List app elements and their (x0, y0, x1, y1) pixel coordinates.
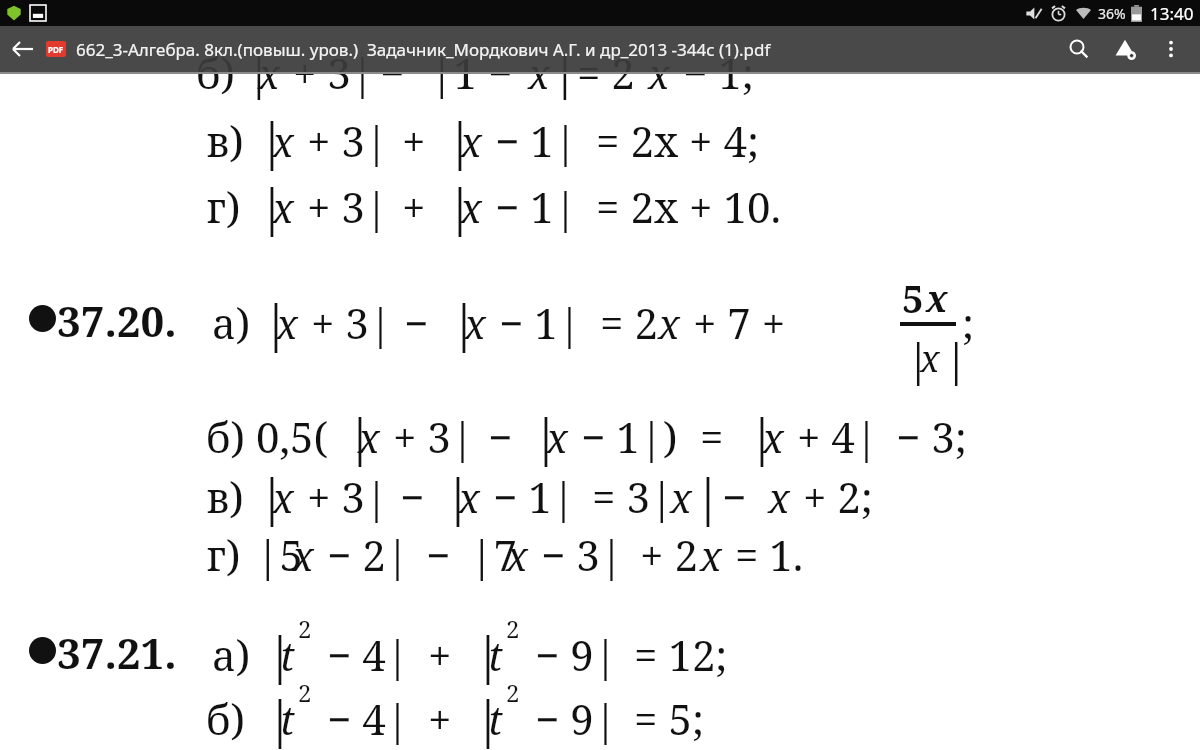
staticText: x (658, 296, 680, 350)
button[interactable]: Search (1056, 26, 1102, 72)
staticText: + 2 (640, 526, 698, 583)
staticText: x (292, 528, 314, 582)
staticText: − 3; (896, 408, 967, 465)
staticText: + 3| (382, 408, 475, 465)
staticText: x (700, 528, 722, 582)
staticText: x (276, 296, 298, 350)
staticText: 5 (902, 272, 924, 324)
staticText: x (768, 470, 790, 524)
staticText: + (428, 690, 452, 747)
staticText: x (920, 334, 940, 383)
staticText: − (722, 468, 747, 525)
staticText: − 4| (316, 690, 410, 747)
staticText: − 1; (672, 44, 754, 101)
staticText: − (380, 44, 405, 101)
staticText: | (446, 172, 474, 240)
staticText: x (258, 46, 280, 100)
staticText: x (546, 410, 568, 464)
staticText: 662_3-Алгебра. 8кл.(повыш. уров.) Задачн… (76, 38, 771, 61)
staticText: | (450, 288, 478, 356)
staticText: | (346, 402, 374, 470)
staticText: | (446, 106, 474, 174)
staticText: + (402, 178, 426, 235)
staticText: 36% (1098, 4, 1126, 23)
staticText: | (748, 402, 776, 470)
staticText: + 3| (296, 468, 389, 525)
staticText: x (272, 470, 294, 524)
staticText: x (670, 470, 692, 524)
staticText: t (488, 692, 503, 746)
staticText: x (358, 410, 380, 464)
staticText: − 9| (524, 626, 618, 683)
staticText: = 2x + 10. (596, 178, 781, 235)
staticText: | (906, 328, 931, 388)
staticText: + 3| (296, 178, 389, 235)
staticText: x (762, 410, 784, 464)
staticText: − 1| (488, 294, 582, 351)
staticText: − 1| (484, 112, 578, 169)
staticText: | (246, 40, 272, 103)
staticText: | (944, 328, 969, 388)
staticText: − (400, 468, 425, 525)
staticText: + 4| (786, 408, 879, 465)
staticText: t (280, 628, 295, 682)
staticText: | (474, 620, 502, 688)
staticText: x (528, 46, 550, 100)
staticText: − 3| (530, 526, 624, 583)
staticText: |7 (470, 526, 517, 583)
staticText: x (458, 470, 480, 524)
staticText: | (444, 462, 472, 530)
button[interactable]: Save to Drive (1102, 26, 1148, 72)
staticText: + (402, 112, 426, 169)
staticText: − (404, 294, 429, 351)
staticText: в) (206, 112, 244, 169)
staticText: x (460, 114, 482, 168)
staticText: | (532, 402, 560, 470)
staticText: + 7 + (682, 294, 786, 351)
staticText: 2 (506, 612, 520, 645)
staticText: 37.20. (57, 292, 177, 349)
staticText: − 4| (316, 626, 410, 683)
button[interactable]: Back (0, 26, 46, 72)
staticText: a) (212, 294, 251, 351)
staticText: | (262, 288, 290, 356)
staticText: − 1| (484, 178, 578, 235)
staticText: t (488, 628, 503, 682)
staticText: = 2 (600, 294, 658, 351)
staticText: + 3| (282, 44, 375, 101)
staticText: − 1| (482, 468, 576, 525)
staticText: − (426, 526, 451, 583)
staticText: |5 (256, 526, 303, 583)
staticText: − (488, 408, 513, 465)
staticText: | (266, 684, 294, 750)
staticText: | (694, 462, 722, 530)
staticText: ; (962, 294, 975, 351)
staticText: x (460, 180, 482, 234)
staticText: − 9| (524, 690, 618, 747)
staticText: PDF (48, 44, 64, 55)
staticText: = 3| (592, 468, 674, 525)
staticText: x (272, 180, 294, 234)
button[interactable]: More options (1148, 26, 1194, 72)
staticText: + 3| (296, 112, 389, 169)
staticText: − 2| (316, 526, 410, 583)
staticText: x (648, 46, 670, 100)
staticText: t (280, 692, 295, 746)
staticText: + (428, 626, 452, 683)
staticText: 13:40 (1150, 2, 1194, 25)
staticText: в) (206, 468, 244, 525)
staticText: | (552, 40, 578, 103)
staticText: x (272, 114, 294, 168)
staticText: б) 0,5( (206, 408, 328, 465)
staticText: = 1. (724, 526, 804, 583)
staticText: = 12; (634, 626, 728, 683)
staticText: | (474, 684, 502, 750)
staticText: | (258, 462, 286, 530)
staticText: | (266, 620, 294, 688)
staticText: = 2x + 4; (596, 112, 759, 169)
staticText: г) (206, 526, 241, 583)
staticText: = (700, 408, 724, 465)
staticText: − 1|) (570, 408, 678, 465)
staticText: x (464, 296, 486, 350)
staticText: б) (196, 44, 246, 101)
